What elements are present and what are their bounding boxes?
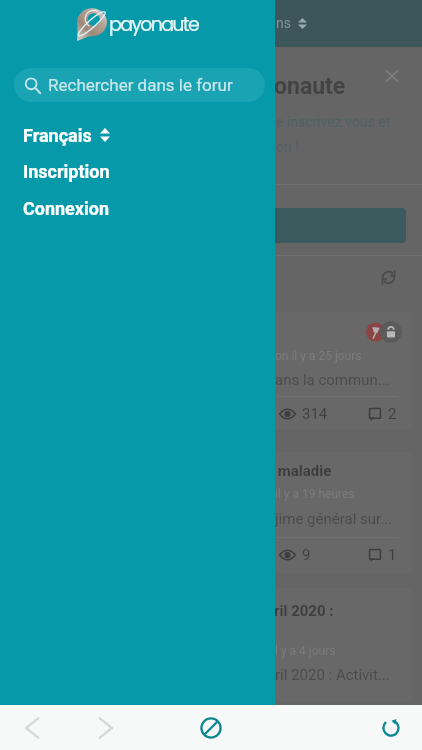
button[interactable] bbox=[10, 312, 412, 430]
staticText: Connexion bbox=[23, 198, 110, 219]
staticText: payonaute bbox=[109, 11, 199, 38]
staticText: 2 bbox=[388, 405, 397, 423]
button[interactable]: Forward bbox=[84, 705, 128, 750]
button[interactable]: Inscription bbox=[0, 158, 275, 184]
staticText: il y a 19 heures bbox=[275, 487, 355, 501]
button[interactable]: payonaute bbox=[75, 7, 199, 41]
staticText: on ! bbox=[276, 139, 299, 155]
staticText: onaute bbox=[274, 73, 346, 100]
button[interactable]: Français bbox=[0, 122, 275, 148]
button[interactable]: Views bbox=[279, 544, 311, 566]
button[interactable]: Comments bbox=[368, 544, 397, 566]
staticText: Rechercher dans le forur bbox=[48, 75, 233, 95]
button[interactable]: Rechercher dans le forur bbox=[14, 68, 265, 102]
staticText: maladie bbox=[274, 462, 332, 480]
button[interactable]: Refresh bbox=[371, 260, 405, 294]
button[interactable] bbox=[16, 208, 406, 243]
staticText: ans la commun... bbox=[275, 371, 390, 389]
button[interactable]: Back bbox=[10, 705, 54, 750]
staticText: Inscription bbox=[23, 161, 110, 182]
staticText: on il y a 25 jours bbox=[275, 349, 362, 363]
staticText: 314 bbox=[302, 405, 328, 423]
staticText: Français bbox=[23, 125, 92, 146]
other: Pinned and locked bbox=[366, 321, 402, 343]
button[interactable] bbox=[10, 588, 412, 708]
button[interactable]: Connexion bbox=[0, 195, 275, 221]
staticText: ns bbox=[276, 15, 291, 31]
staticText: 1 bbox=[388, 546, 397, 564]
button[interactable]: Stop loading bbox=[189, 705, 233, 750]
staticText: ril 2020 : bbox=[274, 602, 334, 620]
button[interactable]: Reload bbox=[369, 705, 413, 750]
button[interactable]: Views bbox=[279, 403, 328, 425]
staticText: e inscrivez vous et bbox=[276, 114, 391, 130]
staticText: ril 2020 : Activit... bbox=[275, 666, 390, 684]
button[interactable] bbox=[10, 452, 412, 573]
staticText: l y a 4 jours bbox=[275, 644, 336, 658]
staticText: jime général sur... bbox=[275, 510, 393, 528]
staticText: 9 bbox=[302, 546, 311, 564]
button[interactable]: Close bbox=[378, 62, 406, 90]
button[interactable]: Comments bbox=[368, 403, 397, 425]
button[interactable]: ns bbox=[276, 6, 307, 40]
